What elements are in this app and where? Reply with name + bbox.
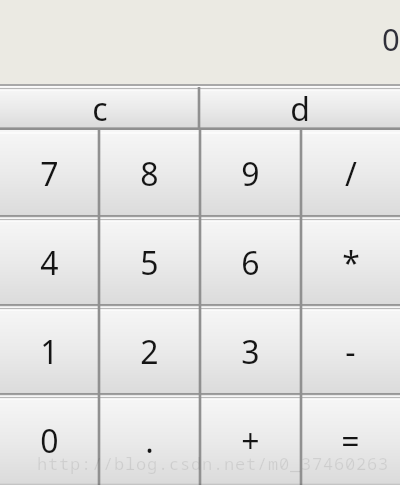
button[interactable]: Delete [199,87,400,130]
button[interactable]: 9 [200,130,301,218]
button[interactable]: 0 [0,396,99,485]
staticText: * [342,241,360,285]
staticText: - [345,330,356,374]
button[interactable]: 5 [99,218,200,307]
button[interactable]: Clear [0,87,199,130]
staticText: http://blog.csdn.net/m0_37460263 [37,452,389,475]
staticText: + [241,419,260,463]
button[interactable]: 2 [99,307,200,396]
staticText: 1 [40,330,59,374]
staticText: 8 [140,152,159,196]
staticText: / [345,152,357,196]
button[interactable]: 6 [200,218,301,307]
staticText: 0 [40,419,59,463]
staticText: 6 [241,241,260,285]
button[interactable]: 3 [200,307,301,396]
button[interactable]: Divide [301,130,400,218]
staticText: 7 [40,152,59,196]
button[interactable]: Subtract [301,307,400,396]
staticText: . [145,419,154,463]
staticText: 0 [382,18,400,60]
staticText: 9 [241,152,260,196]
button[interactable]: Multiply [301,218,400,307]
button[interactable]: Add [200,396,301,485]
button[interactable]: Equals [301,396,400,485]
button[interactable]: 1 [0,307,99,396]
button[interactable]: 8 [99,130,200,218]
staticText: d [290,87,310,130]
staticText: = [341,419,360,463]
button[interactable]: Decimal point [99,396,200,485]
staticText: 4 [40,241,59,285]
staticText: 3 [241,330,260,374]
button[interactable]: 4 [0,218,99,307]
staticText: 5 [140,241,159,285]
button[interactable]: 7 [0,130,99,218]
staticText: 2 [140,330,159,374]
staticText: c [92,87,108,130]
